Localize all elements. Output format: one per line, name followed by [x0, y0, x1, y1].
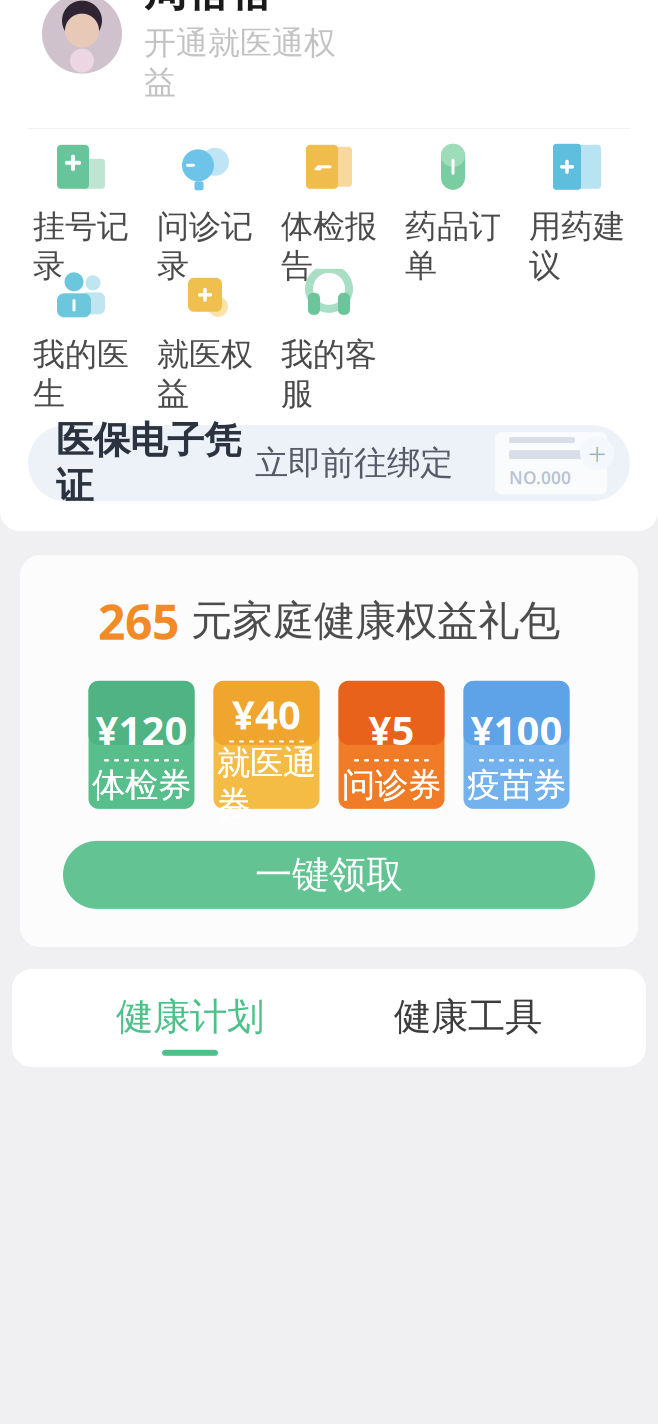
button[interactable]: 药品订单	[391, 161, 515, 265]
button[interactable]: 医保电子凭证	[0, 425, 658, 501]
button[interactable]: 用药建议	[515, 161, 639, 265]
staticText: 健康计划	[116, 994, 264, 1040]
staticText: 体检报告	[281, 207, 377, 285]
staticText: ¥5	[368, 703, 414, 756]
staticText: 一键领取	[255, 852, 403, 898]
button[interactable]: 周蓓蓓	[0, 0, 658, 128]
staticText: ¥40	[232, 687, 301, 740]
button[interactable]: 健康计划	[90, 982, 290, 1068]
staticText: 我的客服	[281, 335, 377, 413]
button[interactable]: 我的客服	[267, 289, 391, 393]
button[interactable]: 体检报告	[267, 161, 391, 265]
staticText: 立即前往绑定	[255, 443, 453, 484]
staticText: 疫苗券	[467, 765, 566, 805]
staticText: ¥100	[470, 703, 562, 756]
staticText: +	[588, 432, 606, 475]
staticText: 问诊记录	[157, 207, 253, 285]
button[interactable]: 健康工具	[368, 982, 568, 1068]
staticText: 周蓓蓓	[144, 0, 273, 17]
staticText: ¥120	[95, 703, 187, 756]
staticText: NO.000	[509, 466, 571, 489]
staticText: 用药建议	[529, 207, 625, 285]
staticText: ¥100	[470, 703, 562, 756]
staticText: 元家庭健康权益礼包	[179, 596, 560, 646]
staticText: 医保电子凭证	[56, 417, 241, 509]
staticText: 就医通券	[217, 742, 316, 824]
staticText: 体检券	[92, 765, 191, 805]
staticText: 挂号记录	[33, 207, 129, 285]
staticText: ¥5	[368, 703, 414, 756]
staticText: 开通就医通权益	[144, 23, 336, 102]
button[interactable]: 挂号记录	[19, 161, 143, 265]
staticText: 我的医生	[33, 335, 129, 413]
staticText: ¥120	[95, 703, 187, 756]
staticText: 药品订单	[405, 207, 501, 285]
button[interactable]: 问诊记录	[143, 161, 267, 265]
staticText: 就医权益	[157, 335, 253, 413]
staticText: 265	[98, 589, 179, 653]
staticText: 疫苗券	[467, 765, 566, 805]
staticText: 体检券	[92, 765, 191, 805]
button[interactable]: 一键领取	[63, 841, 595, 909]
staticText: ¥40	[232, 687, 301, 740]
button[interactable]: 就医权益	[143, 289, 267, 393]
staticText: 问诊券	[342, 765, 441, 805]
staticText: 问诊券	[342, 765, 441, 805]
staticText: 就医通券	[217, 742, 316, 824]
button[interactable]: 我的医生	[19, 289, 143, 393]
staticText: 健康工具	[394, 994, 542, 1040]
